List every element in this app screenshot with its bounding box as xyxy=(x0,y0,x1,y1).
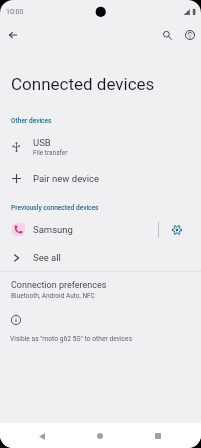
staticText: 10:00 xyxy=(6,8,24,16)
staticText: Samsung xyxy=(33,224,73,235)
button[interactable]: Device settings xyxy=(159,218,194,241)
staticText: Bluetooth, Android Auto, NFC xyxy=(11,292,95,300)
button[interactable]: Navigate up xyxy=(2,24,24,46)
button[interactable]: Samsung xyxy=(0,218,158,241)
button[interactable]: Search xyxy=(157,25,178,46)
staticText: Other devices xyxy=(11,117,52,125)
staticText: Previously connected devices xyxy=(11,204,99,212)
staticText: Visible as "moto g62 5G" to other device… xyxy=(10,335,133,343)
button[interactable]: USB xyxy=(0,135,201,159)
staticText: Connected devices xyxy=(11,74,155,94)
button[interactable]: Home xyxy=(90,426,110,446)
button[interactable]: See all xyxy=(0,246,201,269)
button[interactable]: Recent apps xyxy=(148,426,168,446)
button[interactable]: Back xyxy=(32,426,52,446)
button[interactable]: Connection preferences xyxy=(0,277,201,303)
staticText: See all xyxy=(33,252,61,263)
staticText: Pair new device xyxy=(33,173,100,184)
button[interactable]: Pair new device xyxy=(0,167,201,190)
staticText: File transfer xyxy=(33,149,68,157)
button[interactable]: Help xyxy=(179,24,200,45)
staticText: USB xyxy=(33,137,51,148)
staticText: Connection preferences xyxy=(11,280,107,291)
